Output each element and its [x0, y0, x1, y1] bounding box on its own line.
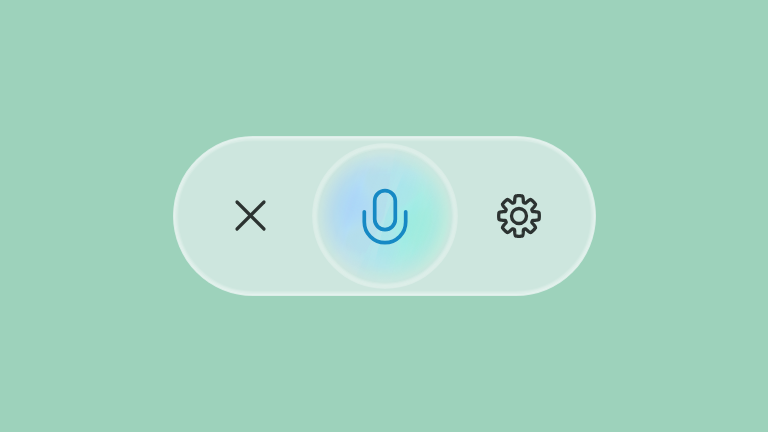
button[interactable]: Microphone	[312, 143, 458, 289]
button[interactable]: Close	[218, 183, 282, 247]
button[interactable]: Settings	[487, 184, 551, 248]
